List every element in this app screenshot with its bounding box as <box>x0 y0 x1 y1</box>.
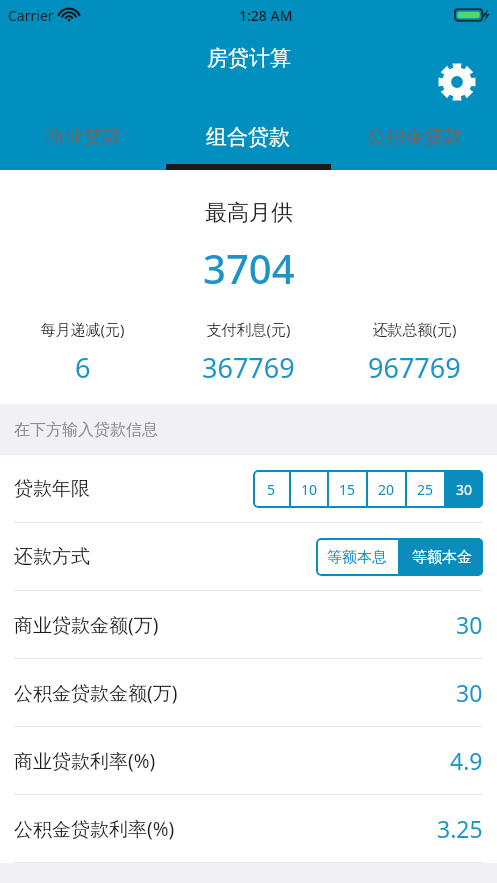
button[interactable]: 组合贷款 <box>165 110 331 164</box>
button[interactable]: 等额本息 <box>316 538 398 576</box>
staticText: 每月递减(元) <box>40 319 125 339</box>
button[interactable]: 贷款年限 <box>0 455 497 522</box>
staticText: 组合贷款 <box>206 124 290 150</box>
staticText: 还款方式 <box>14 545 90 569</box>
button[interactable]: 公积金贷款 <box>331 110 497 164</box>
staticText: 等额本金 <box>412 548 472 567</box>
staticText: 5 <box>267 480 276 499</box>
staticText: 商业贷款金额(万) <box>14 612 159 638</box>
staticText: 商业贷款利率(%) <box>14 748 156 774</box>
button[interactable]: 30 <box>446 470 483 508</box>
staticText: 25 <box>417 480 434 499</box>
staticText: 6 <box>75 349 91 386</box>
staticText: 公积金贷款利率(%) <box>14 816 175 842</box>
staticText: 最高月供 <box>205 199 293 227</box>
button[interactable]: Settings <box>431 56 483 108</box>
button[interactable]: 20 <box>368 470 405 508</box>
staticText: 30 <box>456 677 483 708</box>
button[interactable]: 商业贷款 <box>0 110 165 164</box>
staticText: 贷款年限 <box>14 477 90 501</box>
staticText: Carrier <box>8 6 54 25</box>
button[interactable]: 商业贷款利率(%) <box>0 727 497 794</box>
staticText: 公积金贷款 <box>367 125 462 149</box>
button[interactable]: 公积金贷款利率(%) <box>0 795 497 862</box>
staticText: 3.25 <box>437 813 483 844</box>
button[interactable]: 10 <box>291 470 327 508</box>
staticText: 15 <box>339 480 356 499</box>
button[interactable]: 25 <box>407 470 444 508</box>
staticText: 房贷计算 <box>207 45 291 71</box>
button[interactable]: 5 <box>253 470 289 508</box>
staticText: 支付利息(元) <box>206 319 291 339</box>
staticText: 4.9 <box>450 745 483 776</box>
button[interactable]: 商业贷款金额(万) <box>0 591 497 658</box>
staticText: 967769 <box>368 349 461 386</box>
staticText: 商业贷款 <box>45 125 121 149</box>
staticText: 30 <box>456 609 483 640</box>
staticText: 367769 <box>202 349 295 386</box>
staticText: 30 <box>456 480 473 499</box>
staticText: 1:28 AM <box>239 6 293 25</box>
staticText: 公积金贷款金额(万) <box>14 680 178 706</box>
staticText: 在下方输入贷款信息 <box>14 420 158 440</box>
button[interactable]: 公积金贷款金额(万) <box>0 659 497 726</box>
staticText: 10 <box>301 480 318 499</box>
button[interactable]: 等额本金 <box>400 538 483 576</box>
staticText: 等额本息 <box>327 548 387 567</box>
button[interactable]: 15 <box>329 470 366 508</box>
staticText: 还款总额(元) <box>372 319 457 339</box>
staticText: 3704 <box>203 241 295 295</box>
staticText: 20 <box>378 480 395 499</box>
button[interactable]: 还款方式 <box>0 523 497 590</box>
